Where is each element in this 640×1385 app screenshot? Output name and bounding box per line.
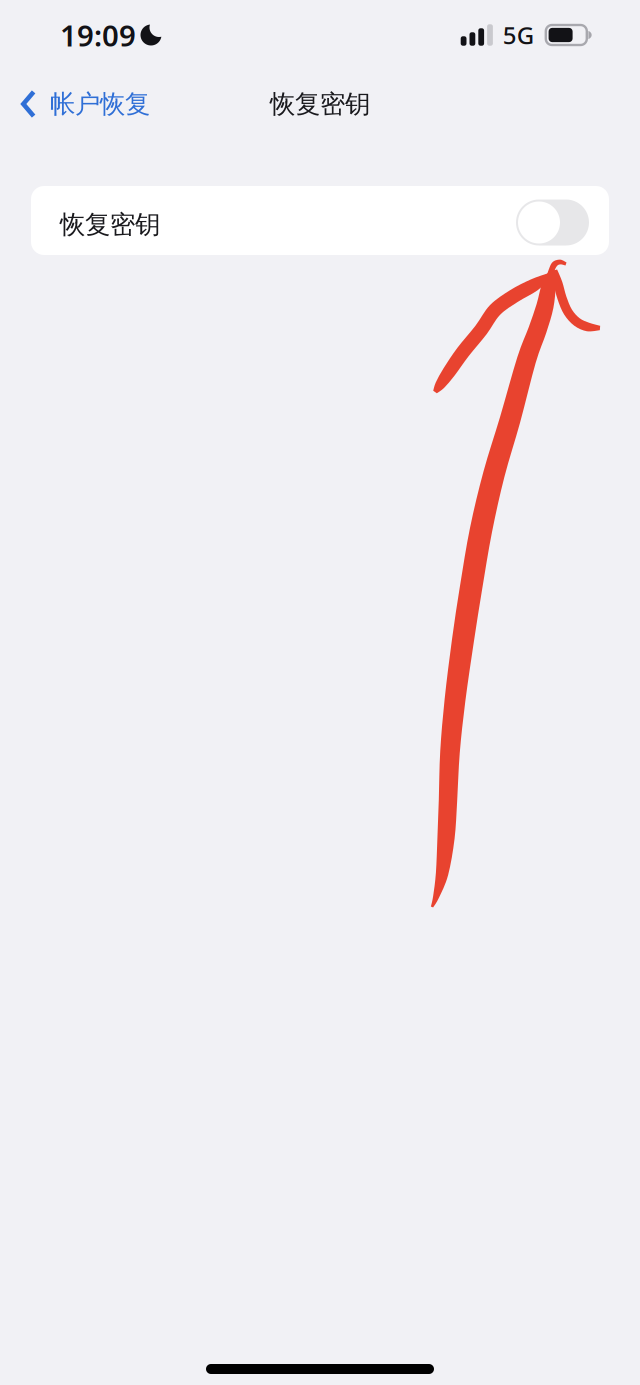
staticText: 恢复密钥 — [60, 209, 160, 240]
button[interactable]: 帐户恢复 — [0, 74, 150, 129]
button[interactable]: 恢复密钥 — [31, 186, 609, 255]
staticText: 5G — [503, 19, 534, 51]
staticText: 19:09 — [60, 15, 136, 54]
staticText: 恢复密钥 — [270, 88, 370, 119]
staticText: 帐户恢复 — [50, 88, 150, 119]
